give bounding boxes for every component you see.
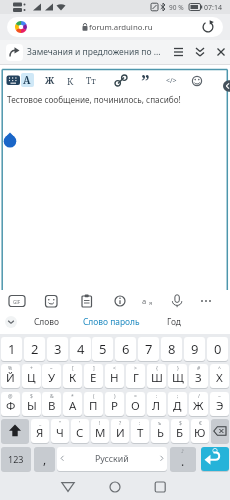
staticText: 07:14 (204, 3, 222, 13)
button[interactable]: ^ (210, 364, 229, 388)
button[interactable]: : (147, 392, 166, 416)
staticText: Н (110, 370, 119, 386)
staticText: # (197, 365, 201, 372)
staticText: Ч (56, 425, 64, 441)
button[interactable]: $ (22, 392, 41, 416)
button[interactable]: ; (168, 392, 187, 416)
button[interactable] (8, 293, 26, 309)
staticText: 1 (8, 340, 16, 358)
button[interactable]: # (189, 364, 208, 388)
button[interactable] (111, 293, 129, 309)
button[interactable]: ? (111, 419, 129, 443)
button[interactable] (168, 293, 186, 309)
button[interactable]: > (126, 364, 145, 388)
button[interactable]: ! (91, 419, 109, 443)
button[interactable] (188, 72, 206, 88)
staticText: A (23, 73, 31, 87)
button[interactable]: 123 (1, 447, 31, 471)
button[interactable]: Слово (34, 316, 59, 327)
staticText: О (131, 398, 140, 414)
staticText: В (48, 398, 56, 414)
button[interactable]: 3 (47, 337, 68, 361)
staticText: * (71, 393, 74, 400)
button[interactable]: Тт (86, 75, 96, 87)
button[interactable] (201, 447, 229, 471)
button[interactable]: Русский (57, 447, 167, 471)
button[interactable] (4, 314, 20, 330)
button[interactable] (112, 72, 130, 88)
button[interactable]: = (126, 392, 145, 416)
staticText: я (149, 299, 153, 306)
button[interactable]: ~ (210, 392, 229, 416)
button[interactable]: + (22, 364, 41, 388)
staticText: GIF (13, 299, 21, 305)
button[interactable] (1, 419, 29, 443)
button[interactable]: € (191, 419, 209, 443)
staticText: 0 (214, 340, 222, 358)
button[interactable]: < (105, 364, 124, 388)
button[interactable]: : (131, 419, 149, 443)
button[interactable]: & (42, 392, 61, 416)
button[interactable]: ” (141, 69, 150, 94)
staticText: С (76, 425, 84, 441)
button[interactable] (211, 419, 229, 443)
button[interactable]: Слово пароль (83, 316, 140, 327)
button[interactable]: 6 (115, 337, 136, 361)
button[interactable] (103, 478, 127, 496)
button[interactable]: [ (63, 364, 82, 388)
button[interactable]: / (189, 392, 208, 416)
button[interactable]: { (147, 364, 166, 388)
button[interactable] (21, 73, 34, 87)
button[interactable]: ) (105, 392, 124, 416)
button[interactable]: К (67, 75, 74, 87)
button[interactable]: – (42, 364, 61, 388)
button[interactable]: 7 (138, 337, 159, 361)
button[interactable] (4, 70, 22, 88)
button[interactable] (138, 72, 156, 88)
staticText: ^ (218, 365, 221, 372)
button[interactable]: 2 (24, 337, 45, 361)
button[interactable]: Год (167, 316, 181, 327)
staticText: " (59, 420, 62, 427)
button[interactable] (56, 478, 80, 496)
button[interactable] (148, 478, 172, 496)
button[interactable]: _ (31, 419, 49, 443)
staticText: Б (176, 425, 184, 441)
staticText: 8 (168, 340, 176, 358)
button[interactable]: % (1, 364, 20, 388)
button[interactable] (78, 293, 96, 309)
button[interactable]: 8 (161, 337, 182, 361)
button[interactable]: , (34, 447, 55, 471)
button[interactable] (42, 293, 60, 309)
button[interactable]: ( (84, 392, 103, 416)
button[interactable]: a (142, 296, 147, 306)
button[interactable]: * (63, 392, 82, 416)
button[interactable] (196, 18, 216, 36)
staticText: Х (216, 370, 223, 386)
button[interactable]: } (168, 364, 187, 388)
button[interactable]: </> (166, 76, 177, 86)
button[interactable]: 9 (184, 337, 205, 361)
staticText: < (113, 365, 116, 372)
staticText: – (50, 365, 53, 372)
button[interactable]: ъ (151, 419, 169, 443)
button[interactable]: 5 (92, 337, 113, 361)
staticText: 9 (191, 340, 199, 358)
button[interactable]: ' (71, 419, 89, 443)
staticText: 2 (31, 340, 39, 358)
button[interactable] (6, 44, 23, 61)
button[interactable]: 0 (207, 337, 228, 361)
button[interactable]: Ж (45, 74, 55, 86)
button[interactable]: 1 (1, 337, 22, 361)
staticText: Ю (194, 425, 206, 441)
staticText: % (8, 365, 13, 372)
staticText: & (50, 393, 54, 400)
button[interactable]: @ (1, 392, 20, 416)
button[interactable] (7, 17, 223, 37)
button[interactable]: 4 (70, 337, 91, 361)
button[interactable]: ♪ (170, 447, 196, 471)
button[interactable] (196, 293, 216, 309)
button[interactable]: " (51, 419, 69, 443)
button[interactable]: $ (171, 419, 189, 443)
button[interactable]: ] (84, 364, 103, 388)
